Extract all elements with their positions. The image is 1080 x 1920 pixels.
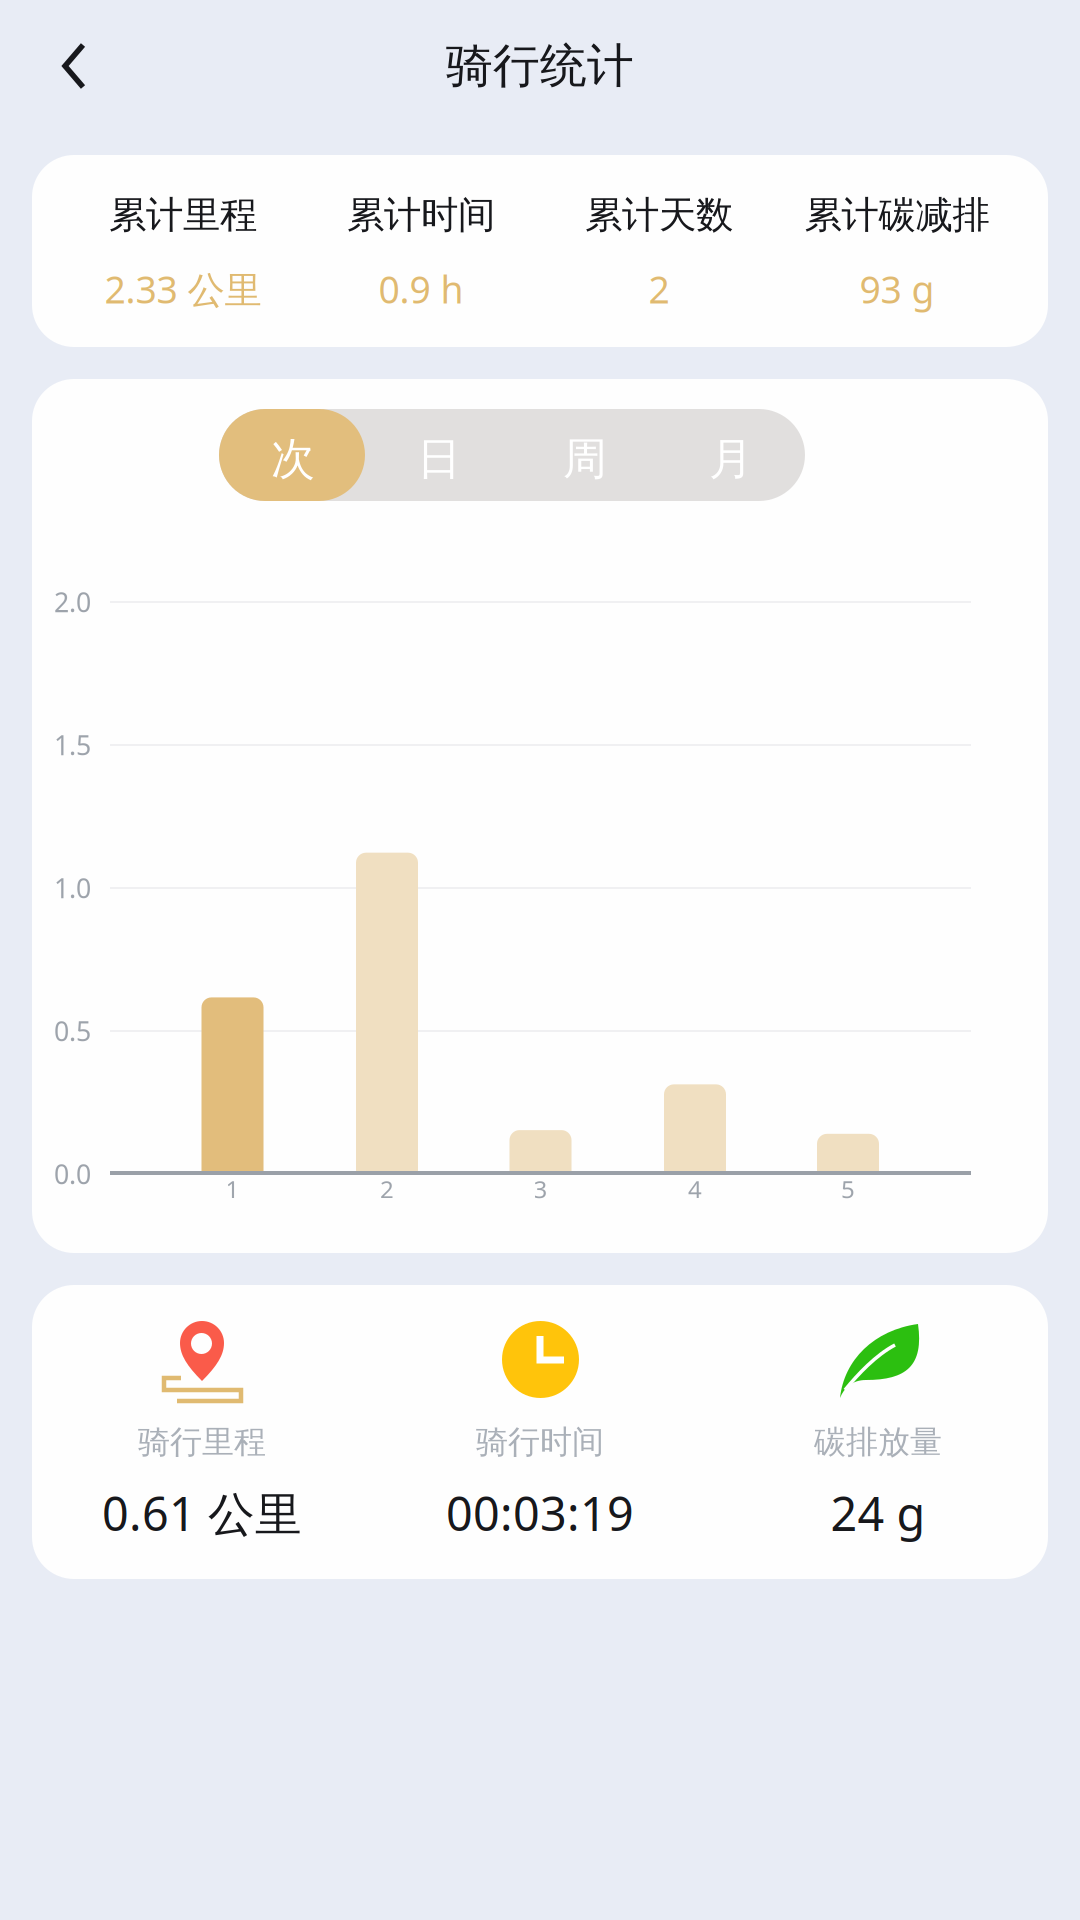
- staticText: 3: [533, 1173, 547, 1205]
- staticText: 5: [841, 1173, 855, 1205]
- staticText: 2: [380, 1173, 394, 1205]
- staticText: 日: [417, 432, 461, 486]
- staticText: 周: [563, 432, 607, 486]
- staticText: 骑行时间: [476, 1422, 604, 1462]
- staticText: 累计里程: [109, 192, 257, 238]
- staticText: 累计天数: [585, 192, 733, 238]
- button[interactable]: 骑行里程: [33, 1285, 371, 1579]
- staticText: 1: [225, 1173, 239, 1205]
- staticText: 00:03:19: [446, 1482, 634, 1544]
- staticText: 0.61 公里: [102, 1482, 302, 1544]
- staticText: 0.9 h: [378, 264, 463, 314]
- staticText: 0.5: [54, 1013, 91, 1049]
- button[interactable]: 累计碳减排: [778, 155, 1016, 347]
- button[interactable]: 周: [512, 409, 658, 501]
- button[interactable]: 累计天数: [540, 155, 778, 347]
- staticText: 2: [648, 264, 669, 314]
- button[interactable]: 累计时间: [302, 155, 540, 347]
- button[interactable]: Back: [19, 11, 129, 121]
- staticText: 累计时间: [347, 192, 495, 238]
- button[interactable]: 月: [658, 409, 804, 501]
- staticText: 1.0: [54, 870, 91, 906]
- staticText: 0.0: [54, 1156, 91, 1192]
- staticText: 1.5: [54, 727, 91, 763]
- button[interactable]: 日: [366, 409, 512, 501]
- button[interactable]: 碳排放量: [709, 1285, 1047, 1579]
- staticText: 93 g: [859, 264, 934, 314]
- staticText: 2.0: [54, 584, 91, 620]
- staticText: 次: [271, 432, 315, 486]
- button[interactable]: 次: [220, 409, 366, 501]
- staticText: 4: [688, 1173, 702, 1205]
- button[interactable]: 骑行时间: [371, 1285, 709, 1579]
- staticText: 骑行统计: [446, 37, 634, 95]
- staticText: 24 g: [830, 1482, 925, 1544]
- staticText: 月: [709, 432, 753, 486]
- staticText: 碳排放量: [814, 1422, 942, 1462]
- staticText: 累计碳减排: [804, 192, 989, 238]
- button[interactable]: 累计里程: [64, 155, 302, 347]
- staticText: 2.33 公里: [104, 264, 261, 314]
- staticText: 骑行里程: [138, 1422, 266, 1462]
